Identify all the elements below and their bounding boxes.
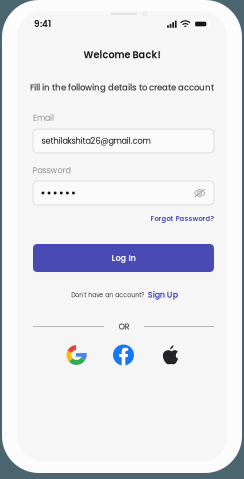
button[interactable]: Continue with Google (59, 344, 93, 366)
staticText: Forgot Password? (150, 214, 214, 223)
button[interactable]: Don't have an account? (34, 289, 215, 300)
staticText: Sign Up (148, 289, 178, 301)
staticText: sethilakshita26@gmail.com (41, 135, 150, 147)
button[interactable]: Continue with Apple (153, 344, 187, 366)
staticText: Password (32, 165, 70, 176)
staticText: OR (118, 321, 129, 332)
button[interactable]: Continue with Facebook (106, 344, 140, 366)
staticText: Don't have an account? (71, 291, 144, 299)
staticText: 9:41 (34, 18, 51, 30)
staticText: Fill in the following details to create … (30, 81, 214, 93)
button[interactable]: Log In (33, 244, 214, 272)
staticText: Welcome Back! (83, 48, 160, 62)
staticText: Log In (111, 252, 135, 264)
staticText: Email (33, 112, 54, 124)
button[interactable]: Forgot Password? (34, 213, 214, 224)
